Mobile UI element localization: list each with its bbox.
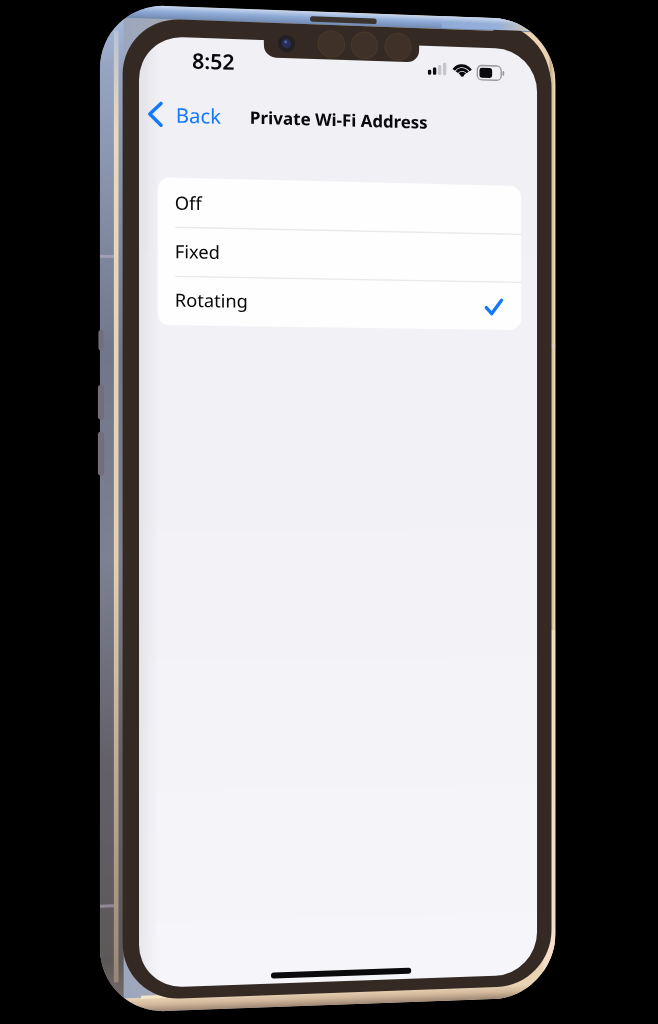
button[interactable]: Back	[145, 97, 222, 132]
staticText: Private Wi-Fi Address	[250, 106, 428, 134]
staticText: 8:52	[192, 46, 235, 77]
staticText: Off	[175, 190, 202, 216]
staticText: Back	[176, 101, 221, 130]
staticText: Fixed	[175, 239, 220, 265]
button[interactable]: Rotating	[157, 275, 520, 329]
button[interactable]: Fixed	[157, 226, 520, 282]
staticText: Rotating	[175, 287, 249, 314]
button[interactable]: Off	[157, 178, 520, 234]
